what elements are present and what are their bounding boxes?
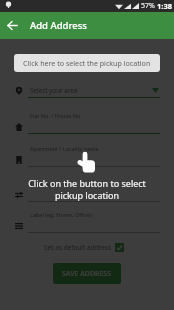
staticText: Click on the button to select pickup loc… (0, 177, 174, 201)
staticText: Set as default address (44, 243, 112, 252)
staticText: SAVE ADDRESS (62, 269, 112, 279)
staticText: Add Address (30, 19, 87, 32)
staticText: Landmark (30, 180, 57, 187)
button[interactable]: Apartment / Locality name (0, 143, 174, 167)
button[interactable]: Set as default address (44, 243, 124, 252)
button[interactable]: Select your area (0, 74, 174, 98)
staticText: 57% (141, 1, 155, 11)
button[interactable]: SAVE ADDRESS (53, 263, 121, 284)
button[interactable]: Click here to select the pickup location (14, 54, 160, 72)
staticText: Select your area (30, 86, 78, 95)
staticText: Apartment / Locality name (30, 145, 99, 152)
button[interactable]: Flat No. / House No. (0, 110, 174, 134)
button[interactable]: Landmark (0, 178, 174, 202)
staticText: 1:38 (157, 1, 172, 11)
staticText: Click here to select the pickup location (23, 58, 151, 68)
staticText: Label (eg. Home, Office) (30, 211, 92, 218)
button[interactable]: Back (0, 12, 25, 39)
staticText: Flat No. / House No. (30, 112, 82, 119)
button[interactable]: Label (eg. Home, Office) (0, 209, 174, 233)
